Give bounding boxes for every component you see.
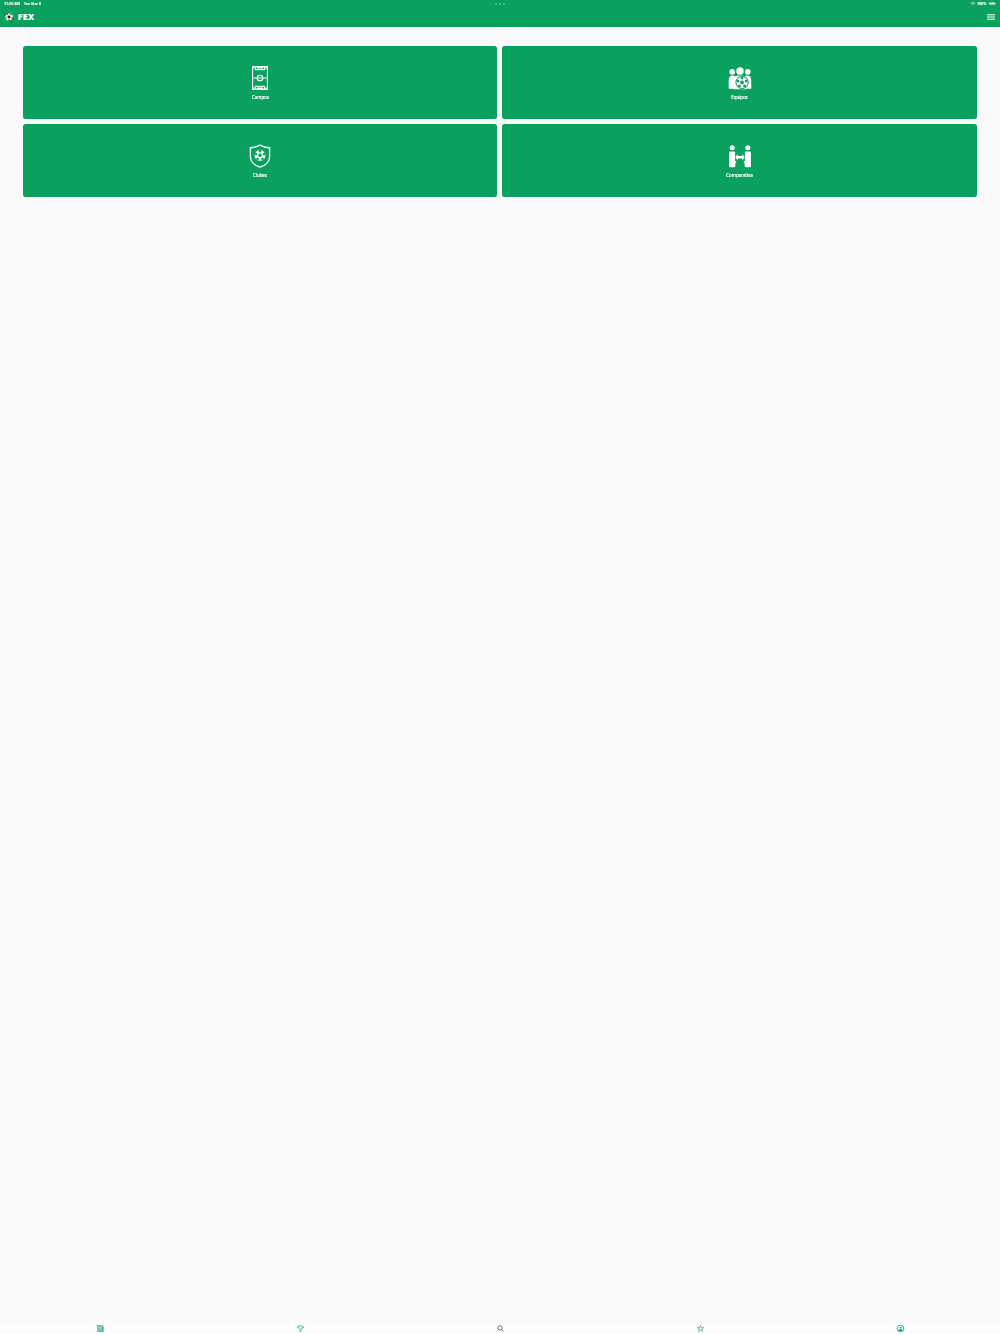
staticText: Campos xyxy=(252,94,269,100)
staticText: Comparativa xyxy=(726,172,753,178)
button[interactable]: Profile xyxy=(800,1323,1000,1334)
button[interactable]: Equipos xyxy=(502,46,977,119)
button[interactable]: Comparativa xyxy=(502,124,977,197)
button[interactable]: Campos xyxy=(23,46,497,119)
staticText: 11:20 AM xyxy=(4,1,20,6)
staticText: Clubes xyxy=(253,172,267,178)
button[interactable]: News xyxy=(0,1323,200,1334)
button[interactable]: Favourites xyxy=(600,1323,800,1334)
button[interactable]: Competitions xyxy=(200,1323,400,1334)
button[interactable]: Search xyxy=(400,1323,600,1334)
button[interactable]: FEX xyxy=(3,11,35,23)
staticText: Tue Mar 8 xyxy=(24,1,41,6)
button[interactable]: Menu xyxy=(985,11,997,23)
staticText: 100% xyxy=(977,1,987,6)
button[interactable]: Clubes xyxy=(23,124,497,197)
staticText: Equipos xyxy=(731,94,748,100)
staticText: FEX xyxy=(18,11,35,23)
